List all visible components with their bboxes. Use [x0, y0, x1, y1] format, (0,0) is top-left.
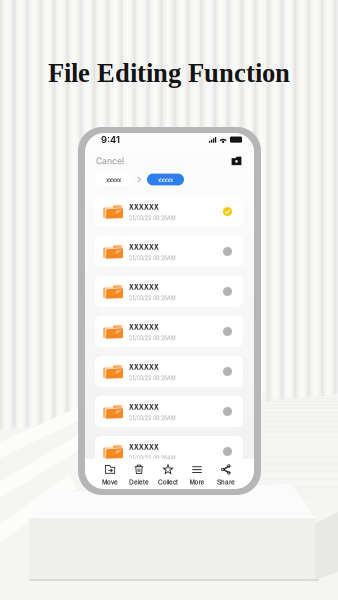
staticText: File Editing Function [48, 58, 290, 88]
staticText: Delete [129, 476, 149, 487]
button[interactable]: Move [95, 465, 124, 486]
staticText: xxxxx [158, 174, 173, 185]
button[interactable]: XXXXXX [95, 356, 243, 387]
staticText: XXXXXX [129, 201, 159, 212]
staticText: 21/03/23 09:26AM [129, 253, 176, 262]
button[interactable]: XXXXXX [95, 276, 243, 307]
button[interactable]: Share [211, 465, 240, 486]
button[interactable]: More [182, 465, 211, 486]
button[interactable]: XXXXXX [95, 436, 243, 467]
staticText: 9:41 [101, 134, 120, 145]
staticText: Collect [158, 476, 178, 487]
staticText: 21/03/23 09:26AM [129, 213, 176, 222]
staticText: XXXXXX [129, 441, 159, 452]
staticText: XXXXXX [129, 281, 159, 292]
staticText: Cancel [96, 156, 124, 166]
button[interactable]: Cancel [85, 154, 130, 167]
staticText: 21/03/23 09:26AM [129, 373, 176, 382]
staticText: XXXXXX [129, 401, 159, 412]
button[interactable]: Collect [153, 465, 182, 486]
staticText: 21/03/23 09:26AM [129, 293, 176, 302]
staticText: Share [217, 476, 235, 487]
staticText: xxxxx [106, 174, 121, 185]
button[interactable]: XXXXXX [95, 396, 243, 427]
staticText: XXXXXX [129, 361, 159, 372]
staticText: XXXXXX [129, 241, 159, 252]
staticText: 21/03/23 09:26AM [129, 333, 176, 342]
button[interactable]: xxxxx [95, 174, 132, 185]
staticText: More [189, 476, 204, 487]
button[interactable]: xxxxx [147, 174, 184, 185]
button[interactable]: New folder [230, 154, 254, 167]
staticText: 21/03/23 09:26AM [129, 453, 176, 462]
button[interactable]: XXXXXX [95, 236, 243, 267]
button[interactable]: XXXXXX [95, 316, 243, 347]
staticText: XXXXXX [129, 321, 159, 332]
button[interactable]: Delete [124, 465, 153, 486]
button[interactable]: XXXXXX [95, 196, 243, 227]
staticText: Move [102, 476, 118, 487]
staticText: 21/03/23 09:26AM [129, 413, 176, 422]
